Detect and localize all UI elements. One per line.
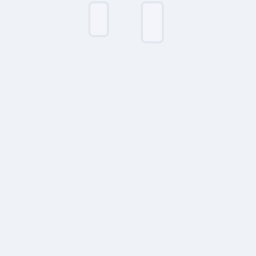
button[interactable]: First tile: [89, 2, 108, 36]
button[interactable]: Second tile: [142, 2, 163, 42]
